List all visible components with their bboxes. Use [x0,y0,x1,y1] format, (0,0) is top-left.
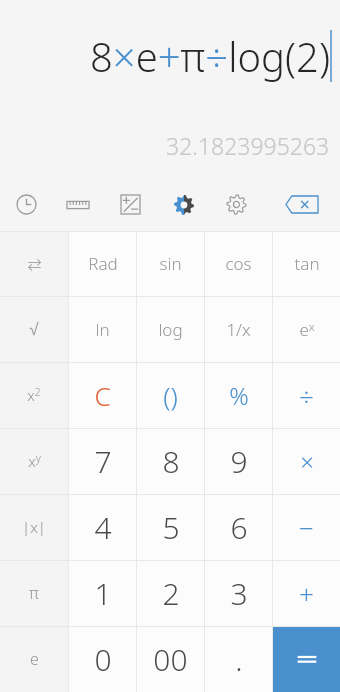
staticText: ÷ [299,378,314,413]
staticText: 8 [162,441,180,482]
staticText: 2 [162,573,180,614]
staticText: π [29,582,39,604]
staticText: 5 [162,507,180,548]
staticText: cos [225,252,252,275]
staticText: √ [29,320,39,339]
button[interactable]: √ [0,296,68,362]
button[interactable]: ln [69,296,136,362]
button[interactable]: log [137,296,204,362]
staticText: ⇄ [27,254,42,274]
button[interactable]: 6 [205,494,272,560]
staticText: 6 [230,507,248,548]
button[interactable]: |x| [0,494,68,560]
staticText: ln [95,318,110,341]
staticText: ex [299,318,315,341]
staticText: . [235,639,243,680]
button[interactable]: x2 [0,362,68,428]
staticText: xy [28,451,41,471]
staticText: × [300,445,314,478]
button[interactable]: History [0,178,52,231]
staticText: 8×e+π÷log(2) [90,29,330,83]
button[interactable]: ⇄ [0,231,68,296]
staticText: 7 [94,441,112,482]
button[interactable] [273,626,340,692]
staticText: 1/x [226,318,251,341]
button[interactable]: 00 [137,626,204,692]
button[interactable]: 2 [137,560,204,626]
button[interactable]: tan [273,231,340,296]
button[interactable]: − [273,494,340,560]
button[interactable]: sin [137,231,204,296]
button[interactable]: Unit converter [52,178,104,231]
button[interactable]: Backspace [263,178,340,231]
button[interactable]: 5 [137,494,204,560]
button[interactable]: % [205,362,272,428]
staticText: 00 [153,639,188,680]
staticText: () [163,378,178,413]
button[interactable]: 1/x [205,296,272,362]
button[interactable]: 9 [205,428,272,494]
staticText: x2 [27,385,41,405]
staticText: 32.1823995263 [166,130,330,161]
button[interactable]: () [137,362,204,428]
button[interactable]: . [205,626,272,692]
staticText: − [299,510,314,545]
button[interactable]: ÷ [273,362,340,428]
staticText: 4 [94,507,112,548]
button[interactable]: + [273,560,340,626]
staticText: sin [159,252,182,275]
button[interactable]: π [0,560,68,626]
staticText: 3 [230,573,248,614]
button[interactable]: Sign [104,178,157,231]
button[interactable]: Rad [69,231,136,296]
button[interactable]: 0 [69,626,136,692]
staticText: Rad [88,252,118,275]
button[interactable]: Settings [210,178,263,231]
button[interactable]: × [273,428,340,494]
button[interactable]: ex [273,296,340,362]
staticText: 9 [230,441,248,482]
staticText: |x| [22,517,46,537]
staticText: + [299,576,314,611]
button[interactable]: Theme [157,178,210,231]
staticText: % [229,379,249,412]
button[interactable]: 4 [69,494,136,560]
staticText: e [30,648,39,670]
button[interactable]: 1 [69,560,136,626]
staticText: 0 [94,639,112,680]
button[interactable]: C [69,362,136,428]
button[interactable]: 8 [137,428,204,494]
button[interactable]: cos [205,231,272,296]
staticText: log [158,318,183,341]
staticText: tan [294,252,320,275]
button[interactable]: 3 [205,560,272,626]
staticText: 1 [94,573,112,614]
staticText: C [94,378,111,413]
button[interactable]: 7 [69,428,136,494]
button[interactable]: e [0,626,68,692]
button[interactable]: xy [0,428,68,494]
